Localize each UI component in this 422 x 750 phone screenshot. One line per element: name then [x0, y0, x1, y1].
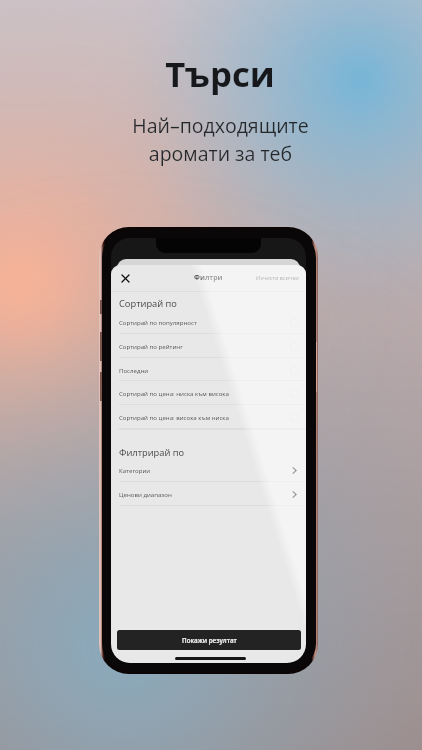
staticText: Сортирай по популярност: [119, 318, 197, 326]
staticText: Сортирай по рейтинг: [119, 342, 183, 350]
staticText: Филтрирай по: [119, 446, 185, 459]
staticText: Сортирай по цена: ниска към висока: [119, 389, 229, 397]
staticText: Най–подходящите аромати за теб: [132, 112, 309, 167]
staticText: Сортирай по цена: висока към ниска: [119, 413, 229, 421]
button[interactable]: Категории: [111, 458, 306, 482]
staticText: Филтри: [194, 273, 223, 282]
button[interactable]: Close filters: [111, 265, 306, 291]
button[interactable]: Покажи резултат: [117, 630, 301, 650]
staticText: Сортирай по: [119, 297, 177, 310]
staticText: Ценови диапазон: [119, 490, 172, 498]
staticText: Изчисти всички: [256, 274, 299, 281]
staticText: Покажи резултат: [182, 636, 237, 645]
staticText: Категории: [119, 466, 151, 474]
button[interactable]: Ценови диапазон: [111, 482, 306, 506]
button[interactable]: Сортирай по цена: висока към ниска: [111, 405, 306, 429]
staticText: Последни: [119, 366, 149, 374]
button[interactable]: Сортирай по цена: ниска към висока: [111, 381, 306, 405]
button[interactable]: Изчисти всички: [256, 268, 299, 286]
button[interactable]: Сортирай по рейтинг: [111, 334, 306, 358]
button[interactable]: Последни: [111, 358, 306, 382]
staticText: Търси: [165, 50, 275, 97]
button[interactable]: Сортирай по популярност: [111, 310, 306, 334]
